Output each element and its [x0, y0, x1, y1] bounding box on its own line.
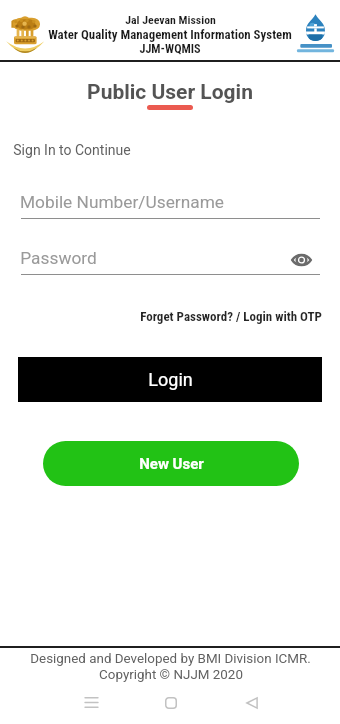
staticText: Water Quality Management Information Sys… — [48, 27, 292, 42]
staticText: New User — [139, 455, 204, 473]
button[interactable]: Login — [18, 357, 322, 402]
button[interactable]: Home — [154, 686, 188, 719]
button[interactable]: Forget Password? / Login with OTP — [140, 309, 322, 324]
button[interactable]: Show password — [287, 248, 315, 272]
staticText: JJM-WQMIS — [139, 42, 201, 56]
staticText: Designed and Developed by BMI Division I… — [30, 651, 311, 667]
staticText: Copyright © NJJM 2020 — [99, 667, 243, 683]
staticText: Mobile Number/Username — [20, 192, 224, 212]
staticText: Sign In to Continue — [13, 142, 131, 158]
button[interactable]: Back — [235, 686, 269, 719]
staticText: Public User Login — [87, 80, 253, 105]
staticText: Password — [20, 248, 97, 268]
button[interactable]: Recents — [74, 686, 108, 719]
staticText: Forget Password? / Login with OTP — [140, 309, 322, 324]
staticText: Jal Jeevan Mission — [125, 13, 216, 27]
staticText: Login — [148, 369, 193, 390]
button[interactable]: New User — [43, 441, 299, 486]
